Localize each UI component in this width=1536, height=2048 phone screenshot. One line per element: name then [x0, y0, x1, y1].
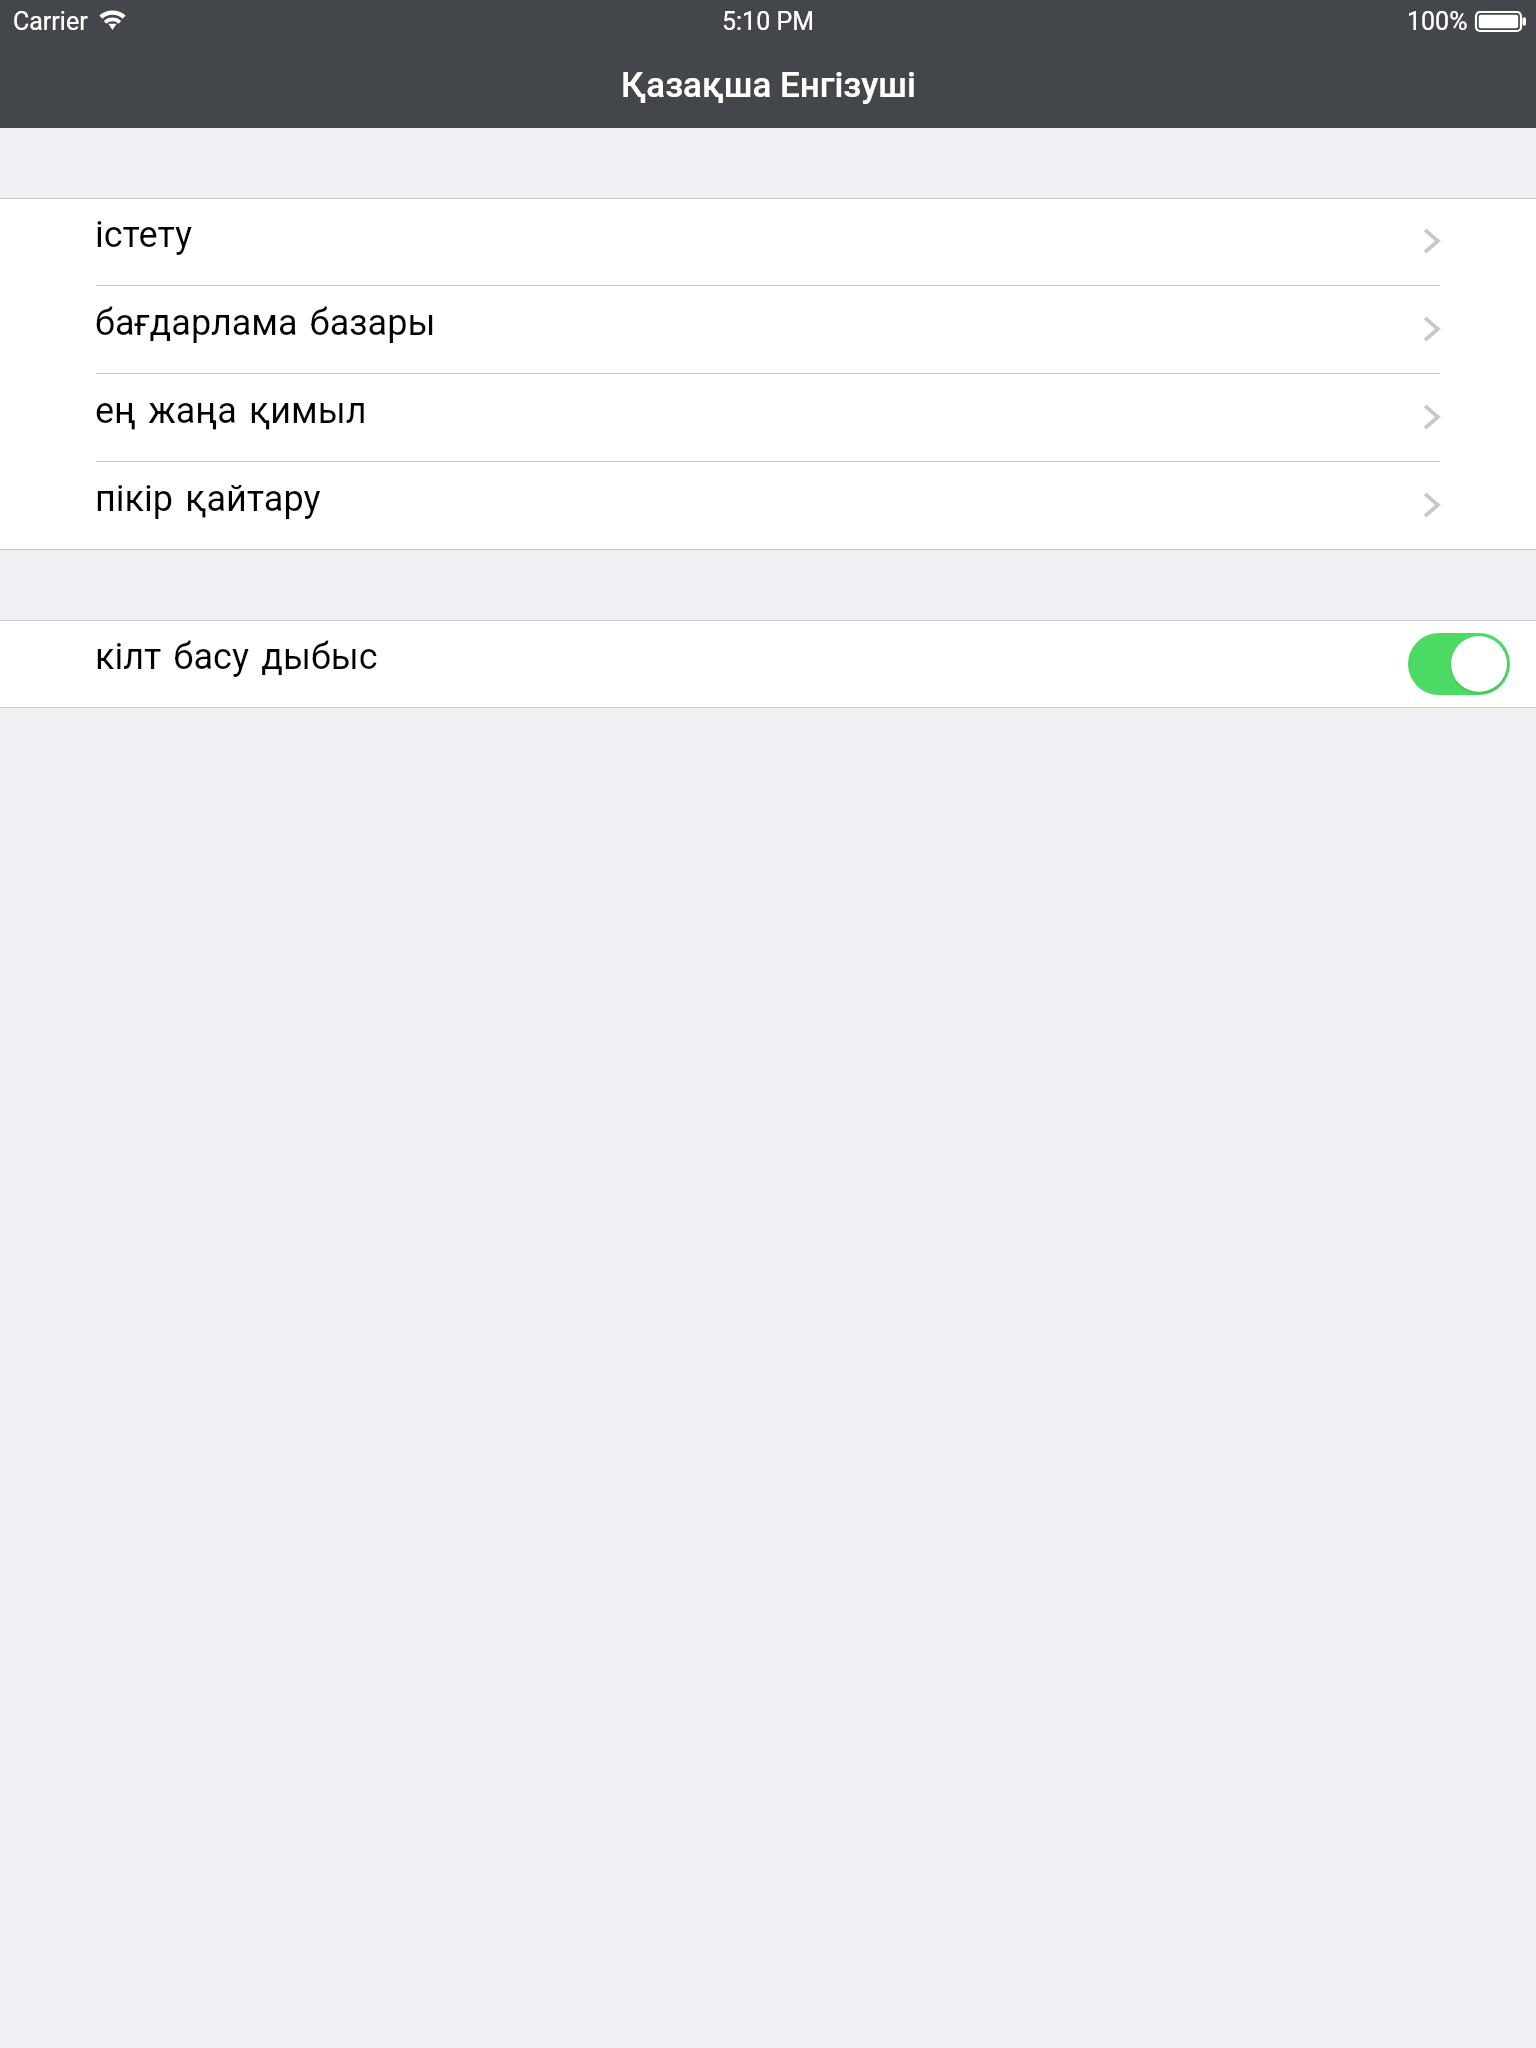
staticText: 100%	[1407, 7, 1468, 36]
button[interactable]: пікір қайтару	[0, 462, 1536, 549]
staticText: 5:10 PM	[722, 7, 815, 36]
staticText: істету	[95, 214, 192, 256]
button[interactable]: бағдарлама базары	[0, 286, 1536, 374]
button[interactable]: кілт басу дыбыс	[0, 621, 1536, 707]
button[interactable]: ең жаңа қимыл	[0, 374, 1536, 462]
other: Wi-Fi	[99, 10, 126, 30]
staticText: ең жаңа қимыл	[95, 390, 367, 432]
button[interactable]: істету	[0, 199, 1536, 286]
staticText: бағдарлама базары	[95, 302, 436, 344]
button[interactable]: Key click sound, on	[1408, 633, 1510, 695]
staticText: пікір қайтару	[95, 478, 321, 520]
staticText: Қазақша Енгізуші	[621, 65, 916, 106]
staticText: Carrier	[13, 7, 88, 36]
other: Battery	[1476, 12, 1526, 31]
staticText: кілт басу дыбыс	[95, 636, 378, 678]
